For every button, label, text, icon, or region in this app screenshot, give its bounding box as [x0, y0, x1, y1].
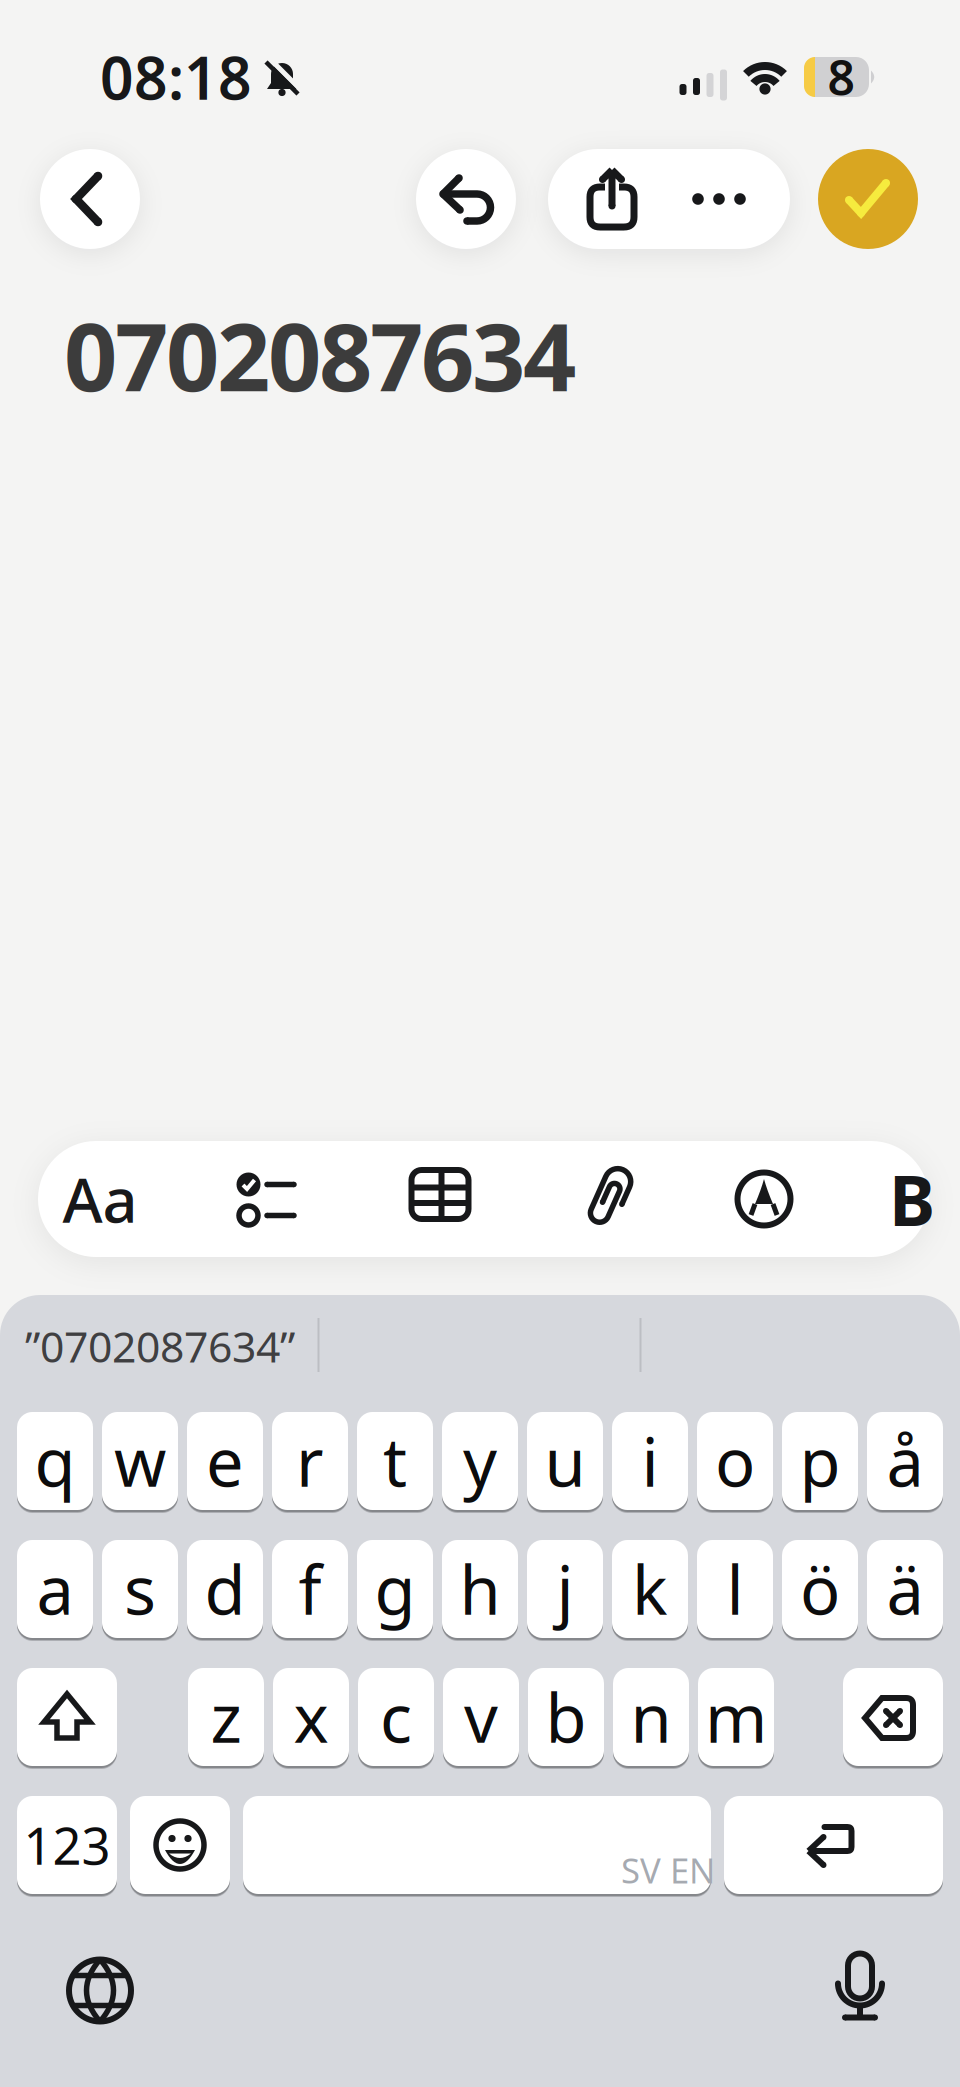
- staticText: 8: [827, 45, 854, 109]
- button[interactable]: t: [357, 1412, 433, 1510]
- button[interactable]: f: [272, 1540, 348, 1638]
- button[interactable]: Table: [397, 1141, 487, 1257]
- button[interactable]: Dictate: [820, 1950, 900, 2030]
- button[interactable]: y: [442, 1412, 518, 1510]
- button[interactable]: Emoji: [130, 1796, 230, 1894]
- staticText: SV EN: [621, 1847, 715, 1893]
- button[interactable]: z: [188, 1668, 264, 1766]
- button[interactable]: x: [273, 1668, 349, 1766]
- button[interactable]: q: [17, 1412, 93, 1510]
- staticText: u: [544, 1417, 585, 1505]
- button[interactable]: b: [528, 1668, 604, 1766]
- staticText: m: [705, 1673, 767, 1761]
- staticText: t: [383, 1417, 407, 1505]
- button[interactable]: å: [867, 1412, 943, 1510]
- button[interactable]: a: [17, 1540, 93, 1638]
- button[interactable]: Space: [243, 1796, 711, 1894]
- staticText: g: [374, 1545, 415, 1633]
- button[interactable]: c: [358, 1668, 434, 1766]
- button[interactable]: e: [187, 1412, 263, 1510]
- staticText: o: [715, 1417, 755, 1505]
- button[interactable]: s: [102, 1540, 178, 1638]
- button[interactable]: ö: [782, 1540, 858, 1638]
- button[interactable]: Draw: [719, 1141, 809, 1257]
- button[interactable]: k: [612, 1540, 688, 1638]
- staticText: z: [210, 1673, 241, 1761]
- button[interactable]: Return: [724, 1796, 943, 1894]
- staticText: y: [463, 1417, 497, 1505]
- button[interactable]: More: [669, 149, 769, 249]
- button[interactable]: Next keyboard: [60, 1950, 140, 2030]
- button[interactable]: i: [612, 1412, 688, 1510]
- staticText: w: [114, 1417, 166, 1505]
- staticText: l: [726, 1545, 743, 1633]
- staticText: ö: [800, 1545, 840, 1633]
- staticText: 123: [23, 1811, 110, 1879]
- button[interactable]: w: [102, 1412, 178, 1510]
- button[interactable]: v: [443, 1668, 519, 1766]
- button[interactable]: Checklist: [221, 1141, 311, 1257]
- button[interactable]: g: [357, 1540, 433, 1638]
- staticText: ä: [886, 1545, 923, 1633]
- staticText: å: [886, 1417, 923, 1505]
- button[interactable]: j: [527, 1540, 603, 1638]
- button[interactable]: Undo: [416, 149, 516, 249]
- staticText: v: [464, 1673, 498, 1761]
- staticText: 0702087634: [64, 293, 576, 417]
- staticText: i: [641, 1417, 658, 1505]
- staticText: 08:18: [100, 38, 252, 116]
- staticText: k: [632, 1545, 668, 1633]
- staticText: j: [556, 1545, 573, 1633]
- button[interactable]: d: [187, 1540, 263, 1638]
- button[interactable]: Bold: [867, 1141, 957, 1257]
- staticText: c: [380, 1673, 412, 1761]
- button[interactable]: p: [782, 1412, 858, 1510]
- staticText: d: [204, 1545, 245, 1633]
- staticText: h: [459, 1545, 500, 1633]
- button[interactable]: h: [442, 1540, 518, 1638]
- staticText: x: [293, 1673, 328, 1761]
- button[interactable]: n: [613, 1668, 689, 1766]
- button[interactable]: Format: [55, 1141, 145, 1257]
- button[interactable]: l: [697, 1540, 773, 1638]
- staticText: f: [298, 1545, 321, 1633]
- button[interactable]: Suggestion 0702087634: [0, 1291, 420, 1401]
- staticText: q: [34, 1417, 75, 1505]
- button[interactable]: ä: [867, 1540, 943, 1638]
- staticText: r: [296, 1417, 324, 1505]
- button[interactable]: o: [697, 1412, 773, 1510]
- button[interactable]: m: [698, 1668, 774, 1766]
- staticText: e: [206, 1417, 244, 1505]
- staticText: b: [545, 1673, 586, 1761]
- staticText: Aa: [62, 1158, 137, 1240]
- button[interactable]: u: [527, 1412, 603, 1510]
- staticText: B: [889, 1153, 935, 1245]
- button[interactable]: Done: [818, 149, 918, 249]
- button[interactable]: r: [272, 1412, 348, 1510]
- staticText: s: [124, 1545, 156, 1633]
- staticText: n: [630, 1673, 671, 1761]
- button[interactable]: Attach: [565, 1141, 655, 1257]
- staticText: ”0702087634”: [25, 1318, 295, 1374]
- button[interactable]: Back: [40, 149, 140, 249]
- staticText: p: [799, 1417, 840, 1505]
- button[interactable]: Share: [569, 149, 669, 249]
- button[interactable]: Delete: [843, 1668, 943, 1766]
- staticText: a: [36, 1545, 73, 1633]
- button[interactable]: Numbers: [17, 1796, 117, 1894]
- button[interactable]: Shift: [17, 1668, 117, 1766]
